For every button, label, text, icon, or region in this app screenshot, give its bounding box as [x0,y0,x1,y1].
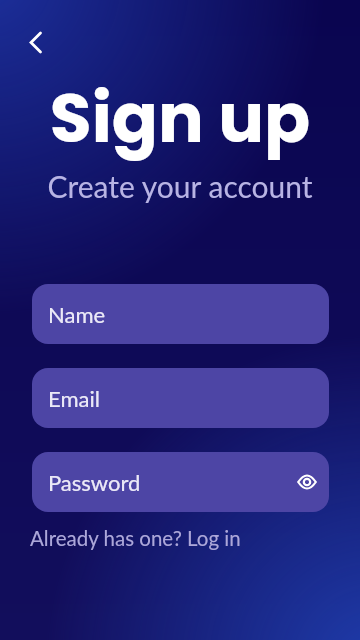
staticText: Sign up [0,71,360,166]
button[interactable] [293,468,321,496]
button[interactable]: Email [32,368,329,428]
staticText: Email [48,385,100,411]
staticText: Create your account [0,168,360,204]
staticText: Name [48,301,106,327]
button[interactable]: Name [32,284,329,344]
button[interactable] [16,23,56,63]
button[interactable]: Already has one? Log in [30,526,241,551]
button[interactable]: Password [32,452,329,512]
staticText: Password [48,469,141,495]
